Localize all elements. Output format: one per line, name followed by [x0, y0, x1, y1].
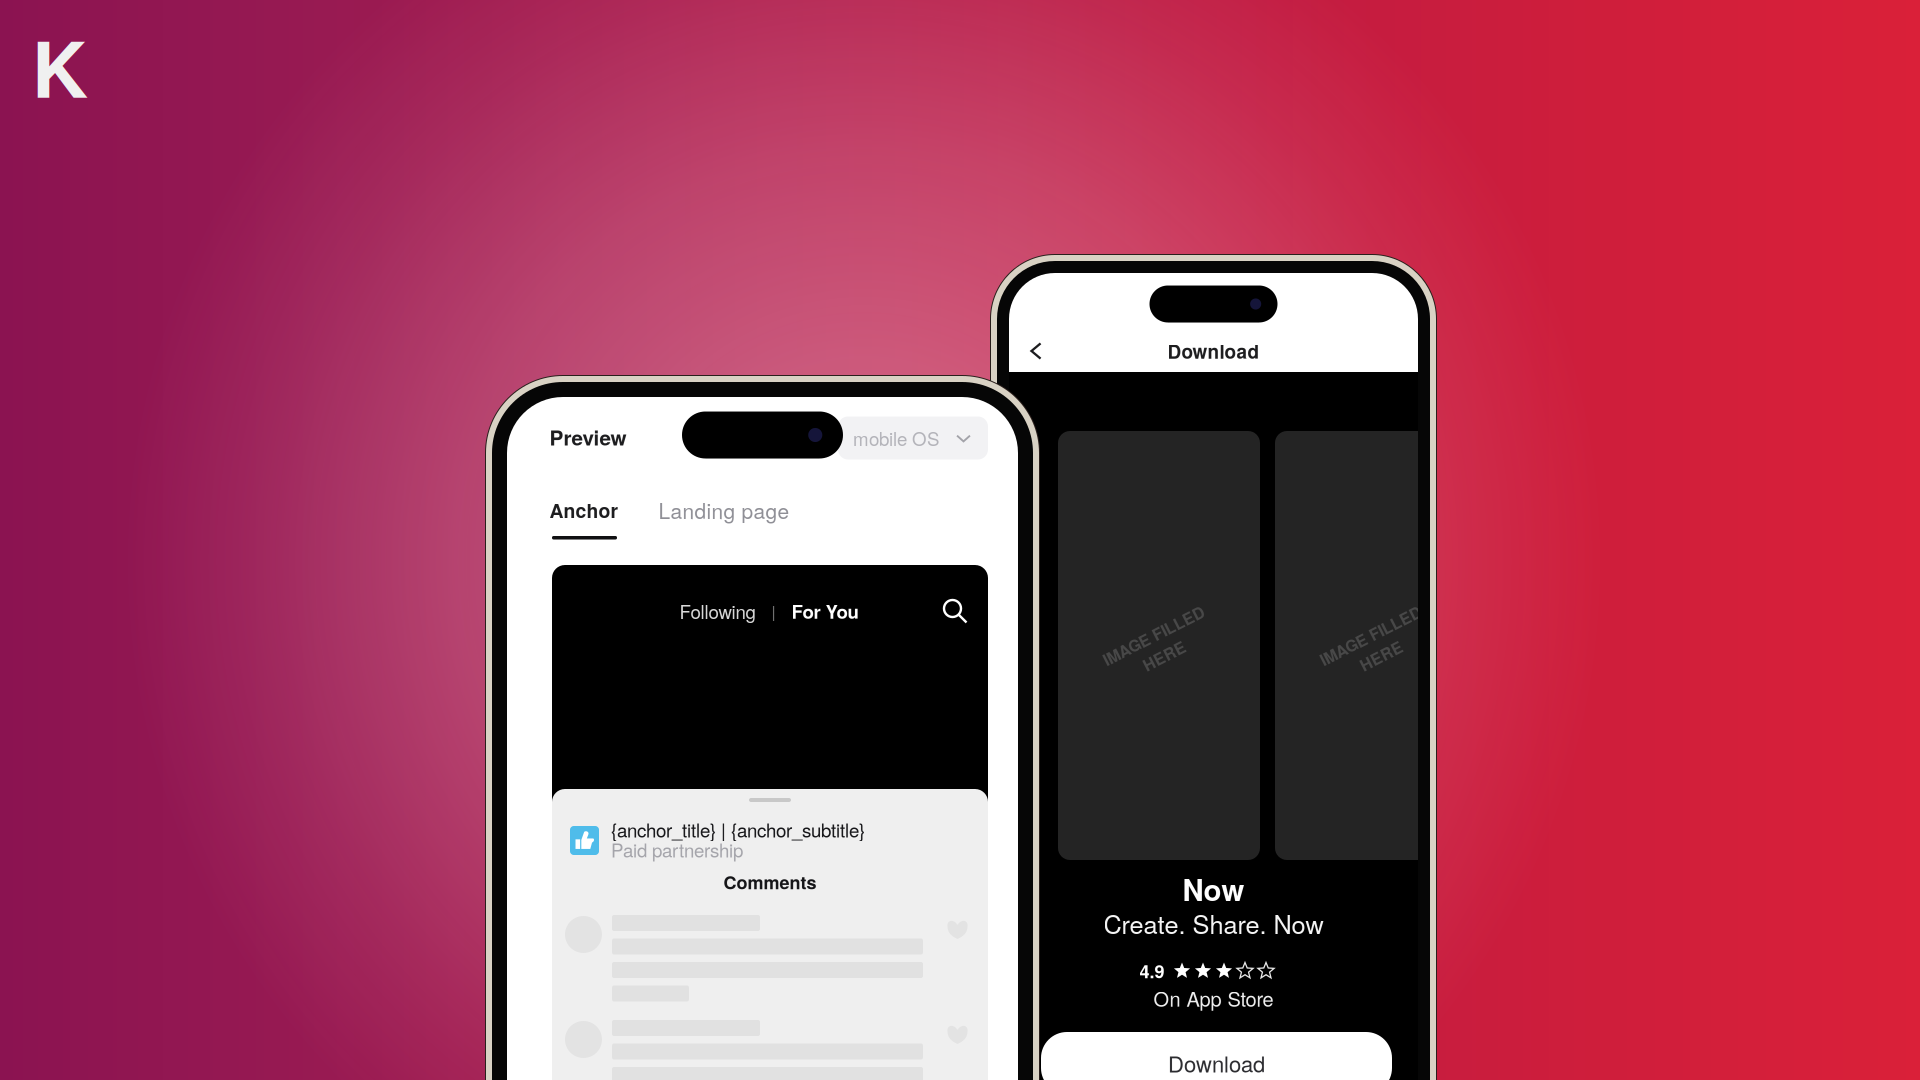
- staticText: IMAGE FILLED: [1320, 623, 1432, 645]
- staticText: Anchor: [549, 496, 618, 524]
- staticText: Paid partnership: [611, 836, 743, 863]
- staticText: 4.9: [1139, 958, 1164, 984]
- staticText: Landing page: [658, 495, 789, 525]
- button[interactable]: Search: [939, 595, 971, 627]
- staticText: Following: [679, 598, 755, 624]
- staticText: Create. Share. Now: [1103, 905, 1323, 941]
- button[interactable]: Landing page: [658, 495, 789, 525]
- staticText: Preview: [549, 422, 626, 452]
- staticText: Now: [1182, 868, 1244, 910]
- staticText: IMAGE FILLED: [1103, 623, 1215, 645]
- button[interactable]: Anchor: [551, 499, 621, 549]
- staticText: Download: [1168, 1047, 1265, 1079]
- button[interactable]: Back: [1019, 334, 1053, 368]
- staticText: K: [32, 11, 88, 121]
- staticText: HERE: [1136, 645, 1182, 668]
- button[interactable]: mobile OS: [838, 416, 988, 459]
- staticText: {anchor_title} | {anchor_subtitle}: [611, 816, 865, 843]
- staticText: On App Store: [1153, 984, 1273, 1012]
- staticText: HERE: [1353, 645, 1399, 668]
- staticText: Comments: [723, 869, 816, 895]
- button[interactable]: Download: [1041, 1032, 1392, 1080]
- staticText: For You: [791, 598, 858, 624]
- staticText: mobile OS: [853, 425, 939, 451]
- staticText: |: [755, 599, 791, 622]
- staticText: Download: [1167, 337, 1259, 364]
